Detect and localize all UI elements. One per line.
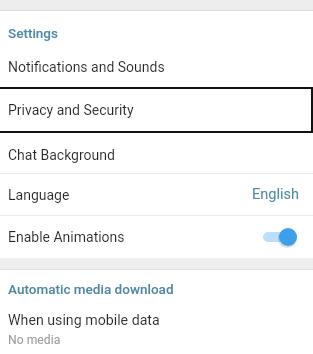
- staticText: Enable Animations: [8, 229, 125, 245]
- staticText: No media: [8, 333, 61, 347]
- button[interactable]: Enable Animations: [0, 216, 313, 258]
- other: Enable Animations toggle: [263, 227, 297, 247]
- button[interactable]: Chat Background: [0, 133, 313, 173]
- staticText: English: [252, 186, 299, 203]
- button[interactable]: When using mobile data: [0, 297, 313, 347]
- button[interactable]: Language: [0, 174, 313, 215]
- staticText: When using mobile data: [8, 312, 160, 329]
- staticText: Automatic media download: [8, 281, 174, 297]
- button[interactable]: Privacy and Security: [0, 87, 313, 133]
- staticText: Privacy and Security: [8, 102, 134, 118]
- staticText: Chat Background: [8, 147, 115, 163]
- staticText: Language: [8, 187, 70, 203]
- button[interactable]: Notifications and Sounds: [0, 41, 313, 87]
- staticText: Notifications and Sounds: [8, 59, 165, 75]
- staticText: Settings: [8, 25, 58, 41]
